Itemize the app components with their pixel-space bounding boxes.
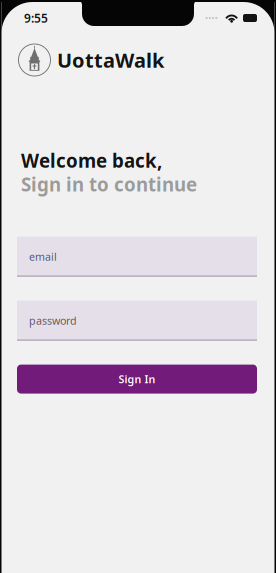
- button[interactable]: password: [17, 301, 257, 341]
- staticText: 9:55: [24, 10, 48, 26]
- staticText: Welcome back,: [21, 148, 162, 173]
- button[interactable]: Sign In: [17, 365, 257, 394]
- staticText: UottaWalk: [57, 47, 164, 73]
- button[interactable]: email: [17, 237, 257, 277]
- staticText: Sign in to continue: [21, 172, 197, 197]
- staticText: password: [29, 313, 77, 328]
- staticText: Sign In: [118, 372, 155, 386]
- staticText: email: [29, 249, 57, 264]
